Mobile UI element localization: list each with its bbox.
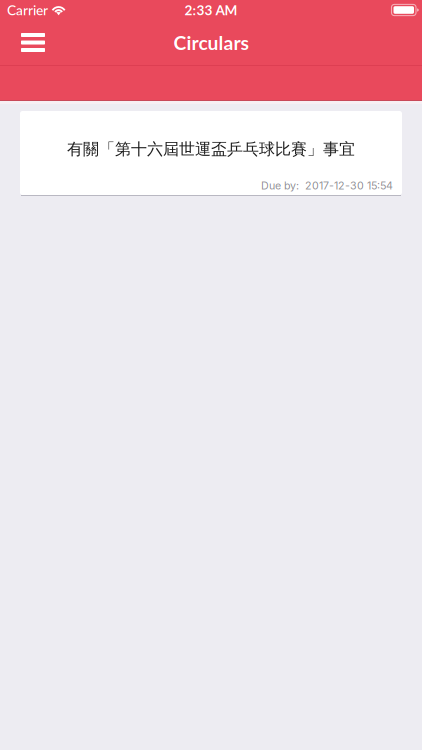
button[interactable]: Menu bbox=[11, 20, 55, 64]
staticText: 2:33 AM bbox=[184, 2, 237, 18]
staticText: 有關「第十六屆世運盃乒乓球比賽」事宜 bbox=[67, 139, 355, 159]
staticText: Due by: 2017-12-30 15:54 bbox=[261, 179, 393, 192]
staticText: Carrier bbox=[7, 2, 48, 18]
staticText: Circulars bbox=[173, 31, 248, 54]
button[interactable]: 有關「第十六屆世運盃乒乓球比賽」事宜 bbox=[20, 111, 402, 195]
